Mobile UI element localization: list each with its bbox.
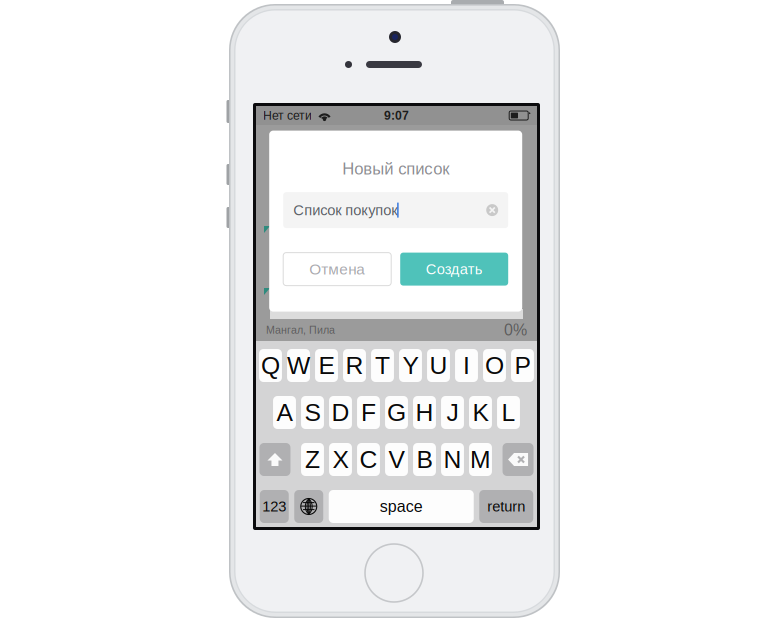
- staticText: Создать: [426, 261, 483, 277]
- button[interactable]: J: [441, 396, 464, 429]
- staticText: D: [331, 399, 349, 426]
- button[interactable]: Delete: [502, 443, 533, 476]
- button[interactable]: Switch keyboard: [294, 490, 323, 523]
- button[interactable]: F: [357, 396, 380, 429]
- button[interactable]: Создать: [400, 253, 508, 286]
- staticText: X: [332, 446, 348, 473]
- button[interactable]: I: [455, 349, 478, 382]
- button[interactable]: Shift: [259, 443, 290, 476]
- staticText: 0%: [504, 321, 527, 339]
- staticText: G: [387, 399, 406, 426]
- staticText: J: [446, 399, 458, 426]
- button[interactable]: X: [329, 443, 352, 476]
- button[interactable]: return: [479, 490, 533, 523]
- staticText: U: [429, 352, 447, 379]
- button[interactable]: O: [483, 349, 506, 382]
- staticText: Мангал, Пила: [266, 324, 335, 336]
- staticText: Список покупок: [293, 202, 397, 218]
- staticText: Отмена: [309, 260, 365, 278]
- staticText: Нет сети: [263, 109, 312, 122]
- staticText: H: [415, 399, 433, 426]
- button[interactable]: M: [469, 443, 492, 476]
- staticText: T: [375, 352, 390, 379]
- staticText: P: [514, 352, 530, 379]
- button[interactable]: A: [273, 396, 296, 429]
- staticText: R: [345, 352, 363, 379]
- staticText: V: [388, 446, 404, 473]
- button[interactable]: L: [497, 396, 520, 429]
- staticText: M: [470, 446, 491, 473]
- button[interactable]: V: [385, 443, 408, 476]
- button[interactable]: Z: [301, 443, 324, 476]
- staticText: F: [361, 399, 376, 426]
- button[interactable]: S: [301, 396, 324, 429]
- staticText: W: [287, 352, 310, 379]
- button[interactable]: K: [469, 396, 492, 429]
- button[interactable]: R: [343, 349, 366, 382]
- staticText: space: [380, 498, 423, 515]
- staticText: L: [501, 399, 515, 426]
- button[interactable]: C: [357, 443, 380, 476]
- button[interactable]: 123: [260, 490, 289, 523]
- button[interactable]: Q: [259, 349, 282, 382]
- button[interactable]: D: [329, 396, 352, 429]
- staticText: I: [463, 352, 470, 379]
- staticText: Z: [305, 446, 320, 473]
- staticText: 9:07: [384, 109, 409, 122]
- button[interactable]: W: [287, 349, 310, 382]
- staticText: B: [416, 446, 432, 473]
- button[interactable]: Clear text: [486, 204, 498, 216]
- staticText: Y: [402, 352, 418, 379]
- button[interactable]: B: [413, 443, 436, 476]
- staticText: S: [304, 399, 320, 426]
- staticText: K: [472, 399, 488, 426]
- button[interactable]: T: [371, 349, 394, 382]
- button[interactable]: Отмена: [283, 253, 391, 286]
- button[interactable]: P: [511, 349, 534, 382]
- staticText: E: [318, 352, 334, 379]
- button[interactable]: E: [315, 349, 338, 382]
- staticText: O: [485, 352, 504, 379]
- staticText: C: [359, 446, 377, 473]
- staticText: return: [487, 498, 525, 515]
- button[interactable]: U: [427, 349, 450, 382]
- staticText: N: [443, 446, 461, 473]
- staticText: 123: [262, 498, 286, 515]
- button[interactable]: H: [413, 396, 436, 429]
- button[interactable]: space: [329, 490, 474, 523]
- staticText: Q: [261, 352, 280, 379]
- staticText: A: [276, 399, 292, 426]
- staticText: Новый список: [342, 159, 449, 178]
- button[interactable]: Y: [399, 349, 422, 382]
- button[interactable]: G: [385, 396, 408, 429]
- button[interactable]: N: [441, 443, 464, 476]
